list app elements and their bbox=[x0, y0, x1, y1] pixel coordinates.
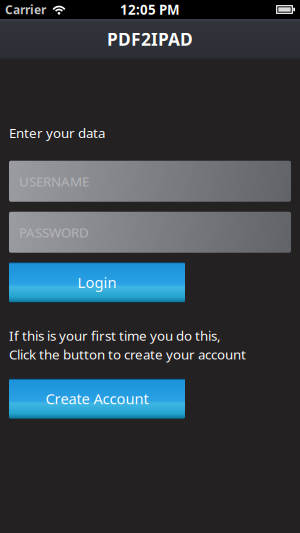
staticText: 12:05 PM bbox=[120, 1, 180, 18]
button[interactable]: USERNAME bbox=[9, 161, 291, 202]
staticText: Click the button to create your account bbox=[9, 345, 246, 363]
staticText: Create Account bbox=[45, 389, 148, 408]
staticText: USERNAME bbox=[19, 172, 89, 190]
button[interactable]: Create Account bbox=[9, 378, 185, 419]
button[interactable]: Login bbox=[9, 262, 185, 303]
staticText: Login bbox=[77, 272, 116, 292]
staticText: If this is your first time you do this, bbox=[9, 327, 221, 344]
staticText: Enter your data bbox=[9, 124, 105, 142]
button[interactable]: PASSWORD bbox=[9, 212, 291, 253]
staticText: PDF2IPAD bbox=[107, 27, 193, 50]
staticText: PASSWORD bbox=[19, 223, 89, 241]
staticText: Carrier bbox=[5, 1, 46, 17]
